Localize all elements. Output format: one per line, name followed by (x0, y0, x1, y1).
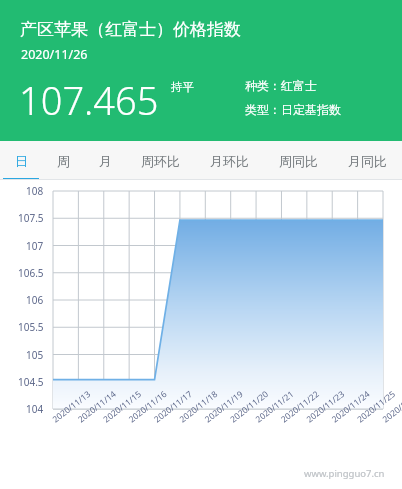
staticText: 月同比 (348, 153, 387, 169)
staticText: 持平 (171, 80, 194, 94)
button[interactable]: 周 (42, 141, 84, 180)
staticText: 月环比 (210, 153, 249, 169)
staticText: 2020/11/26 (21, 46, 88, 63)
staticText: 类型：日定基指数 (245, 102, 341, 117)
button[interactable]: 月环比 (195, 141, 264, 180)
button[interactable]: 周环比 (126, 141, 195, 180)
button[interactable]: 周同比 (264, 141, 333, 180)
staticText: 日 (15, 153, 28, 169)
button[interactable]: 月 (84, 141, 126, 180)
button[interactable]: 日 (0, 141, 42, 180)
staticText: 月 (99, 153, 112, 169)
staticText: 周同比 (279, 153, 318, 169)
staticText: 周环比 (141, 153, 180, 169)
staticText: 产区苹果（红富士）价格指数 (20, 19, 241, 40)
staticText: 周 (57, 153, 70, 169)
staticText: 107.465 (19, 74, 159, 126)
button[interactable]: 月同比 (333, 141, 402, 180)
staticText: 种类：红富士 (245, 78, 317, 93)
